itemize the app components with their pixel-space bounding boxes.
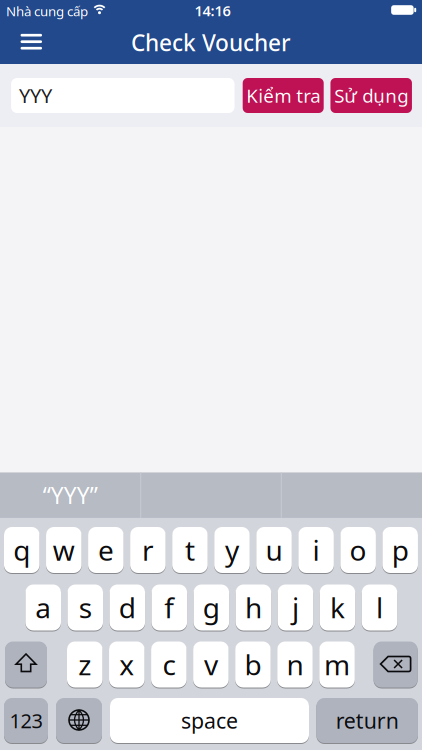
staticText: q — [13, 531, 30, 569]
button[interactable]: c — [151, 641, 187, 688]
button[interactable]: l — [362, 584, 397, 631]
staticText: o — [350, 531, 367, 569]
staticText: i — [313, 531, 320, 569]
button[interactable]: Shift — [5, 641, 47, 688]
staticText: YYY — [19, 82, 52, 109]
staticText: c — [162, 646, 175, 683]
staticText: u — [265, 531, 282, 569]
button[interactable]: n — [277, 641, 313, 688]
button[interactable]: o — [340, 526, 376, 573]
staticText: “YYY” — [43, 480, 98, 510]
staticText: g — [203, 589, 220, 626]
button[interactable]: i — [298, 526, 334, 573]
button[interactable]: x — [109, 641, 145, 688]
staticText: f — [164, 589, 174, 626]
button[interactable]: space — [110, 697, 309, 743]
staticText: m — [324, 646, 350, 683]
button[interactable]: Menu — [13, 26, 49, 58]
staticText: p — [392, 531, 409, 569]
staticText: e — [98, 531, 114, 569]
staticText: Check Voucher — [131, 27, 291, 57]
staticText: z — [78, 646, 91, 683]
button[interactable]: e — [88, 526, 124, 573]
staticText: r — [142, 531, 154, 569]
staticText: k — [330, 589, 345, 626]
button[interactable]: w — [46, 526, 82, 573]
staticText: y — [225, 531, 239, 569]
staticText: n — [286, 646, 303, 683]
button[interactable]: s — [67, 584, 103, 631]
staticText: w — [53, 531, 75, 569]
staticText: h — [245, 589, 262, 626]
button[interactable]: return — [316, 697, 418, 743]
staticText: Sử dụng — [334, 83, 408, 108]
staticText: a — [35, 589, 51, 626]
button[interactable]: Delete — [374, 641, 418, 688]
button[interactable]: p — [382, 526, 418, 573]
staticText: j — [292, 589, 299, 626]
staticText: space — [181, 706, 238, 735]
staticText: x — [119, 646, 134, 683]
button[interactable]: y — [214, 526, 250, 573]
button[interactable]: d — [109, 584, 145, 631]
button[interactable]: j — [278, 584, 313, 631]
staticText: 123 — [9, 707, 42, 734]
button[interactable]: r — [130, 526, 166, 573]
button[interactable]: Next keyboard — [56, 697, 102, 743]
button[interactable]: t — [172, 526, 208, 573]
staticText: Nhà cung cấp — [6, 2, 88, 20]
button[interactable]: g — [194, 584, 229, 631]
staticText: Kiểm tra — [246, 83, 320, 108]
staticText: v — [204, 646, 218, 683]
staticText: d — [119, 589, 136, 626]
button[interactable]: q — [4, 526, 40, 573]
button[interactable]: f — [151, 584, 187, 631]
button[interactable]: z — [67, 641, 103, 688]
button[interactable]: Voucher code — [11, 78, 234, 113]
button[interactable]: m — [319, 641, 355, 688]
button[interactable]: Sử dụng — [330, 78, 412, 113]
staticText: t — [185, 531, 195, 569]
button[interactable]: a — [25, 584, 61, 631]
button[interactable]: b — [235, 641, 271, 688]
staticText: s — [79, 589, 92, 626]
button[interactable]: h — [236, 584, 271, 631]
button[interactable]: k — [320, 584, 355, 631]
staticText: 14:16 — [194, 1, 230, 20]
button[interactable]: Numbers — [4, 697, 48, 743]
button[interactable]: Kiểm tra — [243, 78, 324, 113]
staticText: return — [336, 706, 399, 735]
button[interactable]: u — [256, 526, 292, 573]
button[interactable]: “YYY” — [1, 472, 140, 518]
button[interactable]: v — [193, 641, 229, 688]
staticText: b — [244, 646, 261, 683]
staticText: l — [376, 589, 383, 626]
